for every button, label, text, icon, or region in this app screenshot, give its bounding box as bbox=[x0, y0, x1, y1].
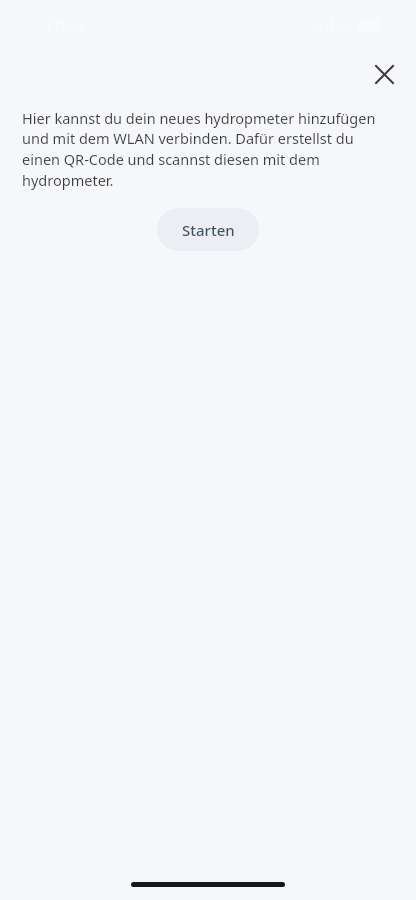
staticText: Hier kannst du dein neues hydropmeter hi… bbox=[22, 108, 392, 190]
button[interactable]: Close bbox=[362, 52, 406, 96]
button[interactable]: Starten bbox=[157, 208, 259, 251]
staticText: Starten bbox=[182, 220, 235, 240]
